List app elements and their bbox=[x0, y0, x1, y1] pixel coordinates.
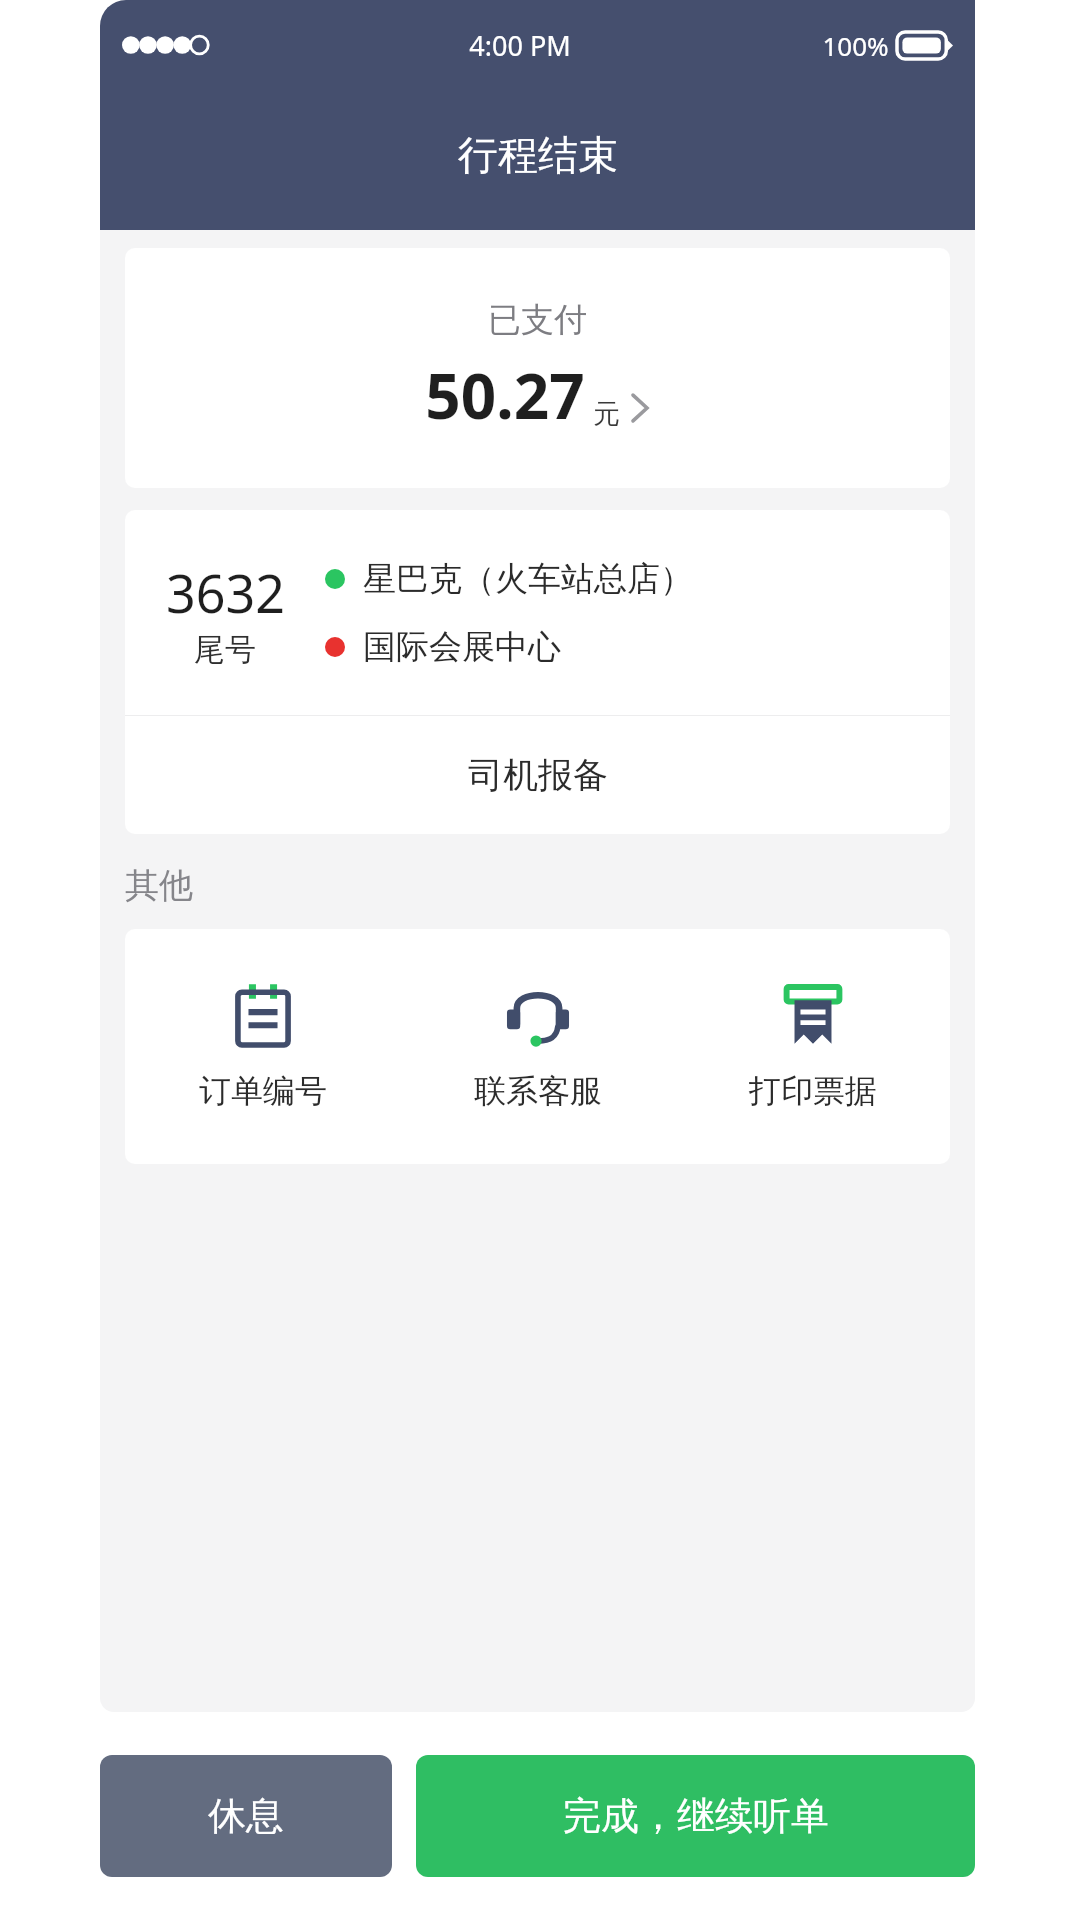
staticText: 50.27 bbox=[425, 353, 585, 437]
staticText: 元 bbox=[593, 397, 620, 431]
staticText: 已支付 bbox=[488, 299, 587, 341]
staticText: 订单编号 bbox=[199, 1071, 327, 1111]
button[interactable]: 完成，继续听单 bbox=[416, 1755, 975, 1877]
button[interactable]: Contact support bbox=[400, 929, 675, 1164]
staticText: 其他 bbox=[125, 864, 193, 907]
staticText: 100% bbox=[822, 28, 889, 63]
button[interactable]: 已支付 bbox=[125, 248, 950, 488]
staticText: 司机报备 bbox=[468, 753, 608, 797]
button[interactable]: 司机报备 bbox=[125, 716, 950, 834]
button[interactable]: 3632 bbox=[125, 510, 950, 715]
staticText: 联系客服 bbox=[474, 1071, 602, 1111]
staticText: 完成，继续听单 bbox=[563, 1792, 829, 1840]
button[interactable]: 休息 bbox=[100, 1755, 392, 1877]
staticText: 行程结束 bbox=[458, 130, 618, 180]
button[interactable]: Print receipt bbox=[675, 929, 950, 1164]
button[interactable]: Order number bbox=[125, 929, 400, 1164]
staticText: 3632 bbox=[166, 557, 285, 628]
staticText: 星巴克（火车站总店） bbox=[363, 558, 693, 600]
staticText: 打印票据 bbox=[749, 1071, 877, 1111]
staticText: 休息 bbox=[208, 1792, 284, 1840]
staticText: 尾号 bbox=[194, 630, 256, 669]
staticText: 国际会展中心 bbox=[363, 626, 561, 668]
staticText: 4:00 PM bbox=[469, 27, 571, 64]
